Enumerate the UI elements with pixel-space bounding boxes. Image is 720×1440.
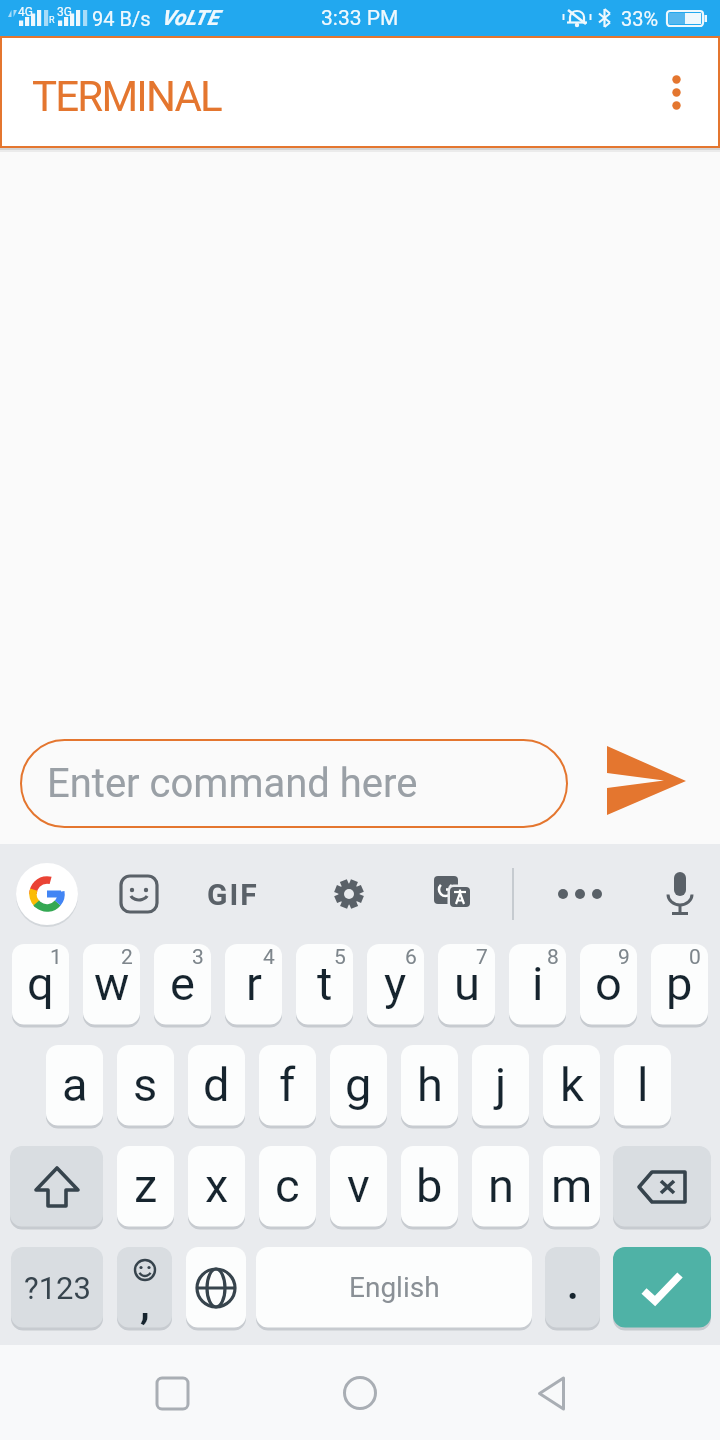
staticText: c bbox=[275, 1158, 300, 1213]
button[interactable] bbox=[16, 863, 78, 925]
staticText: b bbox=[416, 1158, 443, 1213]
button[interactable]: z bbox=[117, 1146, 174, 1227]
staticText: y bbox=[384, 956, 407, 1011]
button[interactable]: q bbox=[12, 944, 69, 1025]
button[interactable]: English bbox=[256, 1247, 532, 1328]
button[interactable]: m bbox=[543, 1146, 600, 1227]
button[interactable] bbox=[330, 1363, 390, 1423]
staticText: 8 bbox=[547, 945, 559, 970]
button[interactable] bbox=[613, 1247, 711, 1328]
staticText: t bbox=[317, 956, 333, 1011]
button[interactable] bbox=[325, 870, 373, 918]
staticText: , bbox=[140, 1281, 150, 1328]
button[interactable] bbox=[607, 746, 686, 815]
staticText: d bbox=[203, 1057, 230, 1112]
staticText: h bbox=[417, 1057, 443, 1112]
staticText: R bbox=[49, 15, 55, 26]
staticText: m bbox=[551, 1158, 593, 1213]
staticText: j bbox=[495, 1057, 507, 1112]
staticText: o bbox=[595, 956, 622, 1011]
staticText: e bbox=[170, 956, 195, 1011]
staticText: l bbox=[637, 1057, 649, 1112]
staticText: 5 bbox=[334, 945, 346, 970]
button[interactable]: ?123 bbox=[11, 1247, 103, 1328]
button[interactable] bbox=[428, 870, 476, 918]
button[interactable]: a bbox=[46, 1045, 103, 1126]
button[interactable] bbox=[657, 871, 703, 917]
staticText: 9 bbox=[618, 945, 630, 970]
button[interactable]: g bbox=[330, 1045, 387, 1126]
button[interactable]: h bbox=[401, 1045, 458, 1126]
button[interactable]: GIF bbox=[207, 844, 259, 944]
staticText: 94 B/s bbox=[92, 7, 151, 30]
staticText: s bbox=[133, 1057, 158, 1112]
staticText: f bbox=[279, 1057, 296, 1112]
button[interactable]: r bbox=[225, 944, 282, 1025]
button[interactable] bbox=[552, 870, 608, 918]
staticText: GIF bbox=[207, 877, 259, 912]
staticText: r bbox=[246, 956, 262, 1011]
button[interactable]: e bbox=[154, 944, 211, 1025]
staticText: VoLTE bbox=[161, 6, 219, 31]
button[interactable]: , bbox=[117, 1247, 172, 1328]
button[interactable] bbox=[646, 62, 706, 122]
button[interactable]: f bbox=[259, 1045, 316, 1126]
button[interactable]: y bbox=[367, 944, 424, 1025]
button[interactable]: b bbox=[401, 1146, 458, 1227]
staticText: 3:33 PM bbox=[321, 6, 399, 31]
button[interactable] bbox=[613, 1146, 711, 1227]
staticText: . bbox=[567, 1262, 579, 1309]
button[interactable]: i bbox=[509, 944, 566, 1025]
button[interactable] bbox=[115, 870, 163, 918]
button[interactable]: s bbox=[117, 1045, 174, 1126]
staticText: u bbox=[454, 956, 480, 1011]
staticText: z bbox=[134, 1158, 158, 1213]
staticText: 7 bbox=[476, 945, 488, 970]
button[interactable]: n bbox=[472, 1146, 529, 1227]
staticText: q bbox=[27, 956, 54, 1011]
button[interactable]: t bbox=[296, 944, 353, 1025]
staticText: i bbox=[532, 956, 544, 1011]
staticText: a bbox=[62, 1057, 88, 1112]
staticText: p bbox=[666, 956, 693, 1011]
staticText: g bbox=[345, 1057, 372, 1112]
button[interactable]: o bbox=[580, 944, 637, 1025]
button[interactable]: w bbox=[83, 944, 140, 1025]
staticText: x bbox=[205, 1158, 229, 1213]
staticText: 33% bbox=[621, 7, 659, 30]
button[interactable] bbox=[186, 1247, 246, 1328]
staticText: w bbox=[94, 956, 130, 1011]
button[interactable]: j bbox=[472, 1045, 529, 1126]
staticText: 4G bbox=[18, 5, 33, 19]
staticText: 3G bbox=[57, 5, 72, 19]
staticText: 1 bbox=[50, 945, 62, 970]
button[interactable]: p bbox=[651, 944, 708, 1025]
staticText: TERMINAL bbox=[32, 72, 221, 121]
staticText: k bbox=[560, 1057, 584, 1112]
button[interactable]: u bbox=[438, 944, 495, 1025]
button[interactable]: x bbox=[188, 1146, 245, 1227]
button[interactable]: k bbox=[543, 1045, 600, 1126]
button[interactable]: d bbox=[188, 1045, 245, 1126]
button[interactable]: c bbox=[259, 1146, 316, 1227]
button[interactable] bbox=[142, 1363, 202, 1423]
button[interactable]: Enter command here bbox=[20, 739, 568, 828]
button[interactable] bbox=[10, 1146, 103, 1227]
staticText: 3 bbox=[192, 945, 204, 970]
button[interactable]: . bbox=[545, 1247, 600, 1328]
staticText: English bbox=[349, 1271, 440, 1304]
staticText: ?123 bbox=[24, 1270, 91, 1306]
button[interactable]: v bbox=[330, 1146, 387, 1227]
button[interactable]: l bbox=[614, 1045, 671, 1126]
staticText: 2 bbox=[121, 945, 133, 970]
staticText: 4 bbox=[263, 945, 275, 970]
staticText: n bbox=[488, 1158, 514, 1213]
staticText: 6 bbox=[405, 945, 417, 970]
staticText: Enter command here bbox=[47, 760, 418, 807]
button[interactable] bbox=[521, 1363, 581, 1423]
staticText: v bbox=[347, 1158, 370, 1213]
staticText: 0 bbox=[689, 945, 701, 970]
